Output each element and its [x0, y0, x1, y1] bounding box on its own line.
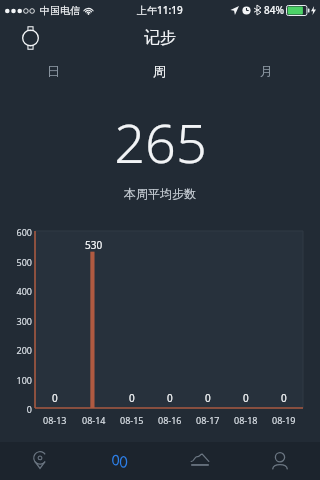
staticText: 100	[16, 374, 32, 386]
staticText: 月	[260, 63, 273, 79]
staticText: 08-19	[272, 414, 296, 426]
staticText: 08-14	[82, 414, 106, 426]
staticText: 08-16	[158, 414, 182, 426]
staticText: 500	[16, 256, 32, 268]
staticText: 08-13	[43, 414, 67, 426]
staticText: 0	[129, 391, 135, 405]
staticText: 本周平均步数	[124, 186, 196, 201]
staticText: 200	[16, 344, 32, 356]
staticText: 530	[85, 238, 103, 252]
staticText: 0	[52, 391, 58, 405]
staticText: 周	[153, 63, 166, 79]
staticText: 300	[16, 315, 32, 327]
staticText: 08-17	[196, 414, 220, 426]
staticText: 0	[281, 391, 287, 405]
staticText: 0	[205, 391, 211, 405]
button[interactable]: Steps	[80, 442, 160, 480]
staticText: 265	[114, 105, 207, 179]
button[interactable]: Profile	[240, 442, 320, 480]
staticText: 08-15	[120, 414, 144, 426]
staticText: 400	[16, 285, 32, 297]
staticText: 上午11:19	[137, 3, 183, 17]
button[interactable]: 日	[0, 55, 106, 87]
staticText: 中国电信	[40, 4, 80, 17]
button[interactable]: Watch	[14, 22, 46, 54]
button[interactable]: Places	[0, 442, 80, 480]
staticText: 84%	[264, 3, 284, 17]
button[interactable]: Trends	[160, 442, 240, 480]
staticText: 0	[167, 391, 173, 405]
button[interactable]: 月	[213, 55, 320, 87]
button[interactable]: 周	[106, 55, 213, 87]
staticText: 0	[243, 391, 249, 405]
staticText: 0	[26, 403, 32, 415]
staticText: 记步	[144, 28, 176, 48]
staticText: 600	[16, 226, 32, 238]
staticText: 日	[47, 63, 60, 79]
staticText: 08-18	[234, 414, 258, 426]
